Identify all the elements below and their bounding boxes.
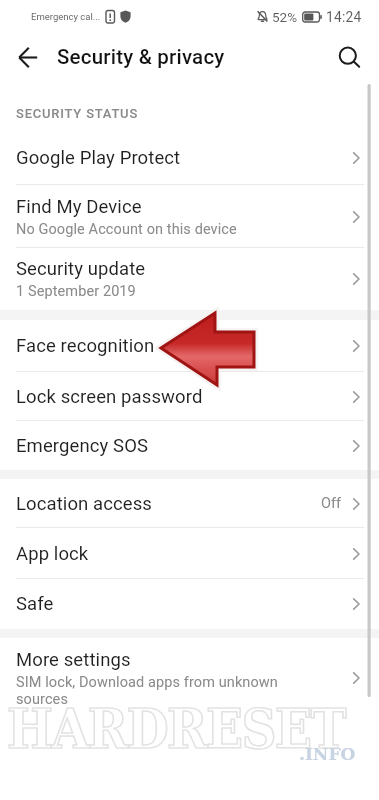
button[interactable]: Security update (0, 248, 379, 310)
staticText: Find My Device (16, 196, 142, 218)
staticText: Face recognition (16, 335, 155, 357)
staticText: 1 September 2019 (16, 283, 136, 300)
staticText: Safe (16, 593, 54, 615)
staticText: Emergency cal... (31, 11, 101, 22)
staticText: .INFO (299, 744, 356, 764)
staticText: SECURITY STATUS (16, 106, 139, 121)
staticText: App lock (16, 543, 89, 565)
staticText: Location access (16, 493, 153, 515)
button[interactable]: Safe (0, 579, 379, 629)
staticText: Security & privacy (57, 45, 225, 69)
button[interactable]: Face recognition (0, 320, 379, 372)
staticText: Off (321, 495, 342, 512)
staticText: SIM lock, Download apps from unknown sou… (16, 674, 278, 707)
staticText: 52% (272, 9, 298, 25)
staticText: Google Play Protect (16, 147, 181, 169)
button[interactable]: Location access (0, 479, 379, 528)
staticText: More settings (16, 649, 131, 671)
staticText: No Google Account on this device (16, 221, 237, 238)
button[interactable] (8, 37, 48, 77)
staticText: Security update (16, 258, 146, 280)
staticText: Lock screen password (16, 386, 203, 408)
button[interactable] (329, 37, 369, 77)
button[interactable]: Find My Device (0, 185, 379, 248)
button[interactable]: Google Play Protect (0, 131, 379, 185)
staticText: 14:24 (326, 9, 362, 25)
button[interactable]: Emergency SOS (0, 421, 379, 470)
button[interactable]: App lock (0, 528, 379, 579)
button[interactable]: More settings (0, 638, 379, 718)
staticText: HARDRESET (7, 697, 346, 760)
button[interactable]: Lock screen password (0, 372, 379, 421)
staticText: Emergency SOS (16, 435, 149, 457)
